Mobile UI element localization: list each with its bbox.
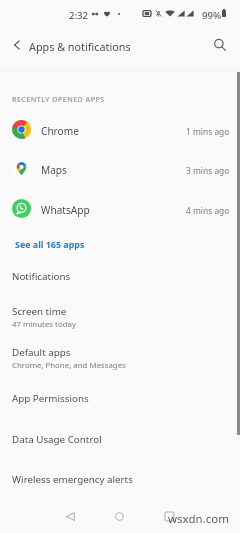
staticText: Chrome (41, 124, 79, 138)
staticText: Screen time (12, 305, 67, 318)
staticText: Wireless emergency alerts (12, 473, 133, 486)
staticText: Apps & notifications (29, 39, 131, 54)
staticText: See all 165 apps (15, 238, 85, 250)
staticText: 99% (202, 9, 222, 22)
staticText: WhatsApp (41, 203, 90, 217)
button[interactable]: Back (4, 32, 30, 58)
button[interactable]: Data Usage Control (0, 420, 240, 460)
staticText: Notifications (12, 270, 71, 283)
staticText: 2:32 (69, 9, 89, 22)
button[interactable]: Wireless emergency alerts (0, 460, 240, 500)
button[interactable]: See all 165 apps (0, 232, 240, 256)
button[interactable]: Screen time (0, 291, 240, 333)
button[interactable]: Search (206, 31, 234, 59)
staticText: RECENTLY OPENED APPS (12, 94, 105, 104)
button[interactable]: Default apps (0, 333, 240, 379)
staticText: 4 mins ago (186, 205, 230, 216)
button[interactable]: App Permissions (0, 379, 240, 420)
button[interactable]: Recent apps (151, 498, 187, 533)
staticText: Maps (41, 163, 67, 177)
staticText: Chrome, Phone, and Messages (12, 360, 126, 371)
button[interactable]: Home (101, 498, 137, 533)
button[interactable]: WhatsApp (0, 192, 240, 228)
staticText: wsxdn.com (168, 511, 229, 527)
staticText: Default apps (12, 346, 71, 359)
staticText: App Permissions (12, 392, 89, 405)
staticText: Data Usage Control (12, 433, 102, 446)
button[interactable]: Chrome (0, 113, 240, 149)
staticText: 47 minutes today (12, 319, 76, 330)
button[interactable]: Notifications (0, 256, 240, 291)
staticText: 1 mins ago (186, 126, 230, 137)
button[interactable]: Maps (0, 152, 240, 188)
button[interactable]: Back (52, 498, 88, 533)
staticText: 3 mins ago (186, 165, 230, 176)
